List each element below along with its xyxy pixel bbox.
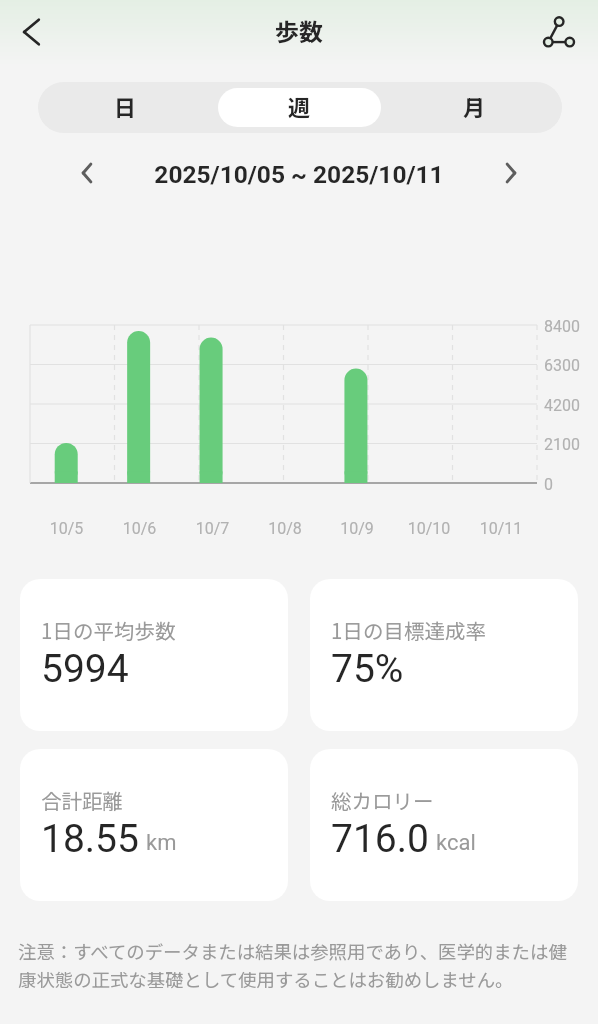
staticText: km <box>146 830 177 856</box>
staticText: 注意：すべてのデータまたは結果は参照用であり、医学的または健康状態の正式な基礎と… <box>18 938 570 993</box>
staticText: 10/9 <box>321 519 393 538</box>
staticText: 10/8 <box>249 519 321 538</box>
button[interactable]: 月 <box>393 88 556 127</box>
staticText: 総カロリー <box>331 785 434 815</box>
button[interactable]: 週 <box>218 88 381 127</box>
staticText: 75% <box>331 646 404 692</box>
staticText: 2100 <box>544 435 580 454</box>
button[interactable]: Share <box>535 8 583 56</box>
staticText: 0 <box>544 475 553 494</box>
staticText: 1日の平均歩数 <box>41 615 176 645</box>
button[interactable]: 合計距離 <box>20 749 288 901</box>
staticText: 18.55 <box>41 816 139 862</box>
staticText: 日 <box>114 90 137 122</box>
staticText: 月 <box>463 90 486 122</box>
staticText: 歩数 <box>0 13 598 48</box>
staticText: 10/7 <box>176 519 249 538</box>
button[interactable]: 日 <box>44 88 206 127</box>
button[interactable]: 1日の目標達成率 <box>310 579 578 731</box>
button[interactable]: 1日の平均歩数 <box>20 579 288 731</box>
staticText: 6300 <box>544 356 580 375</box>
staticText: 10/11 <box>465 519 537 538</box>
staticText: 10/10 <box>393 519 465 538</box>
staticText: 10/5 <box>30 519 103 538</box>
button[interactable]: Next week <box>489 151 533 195</box>
button[interactable]: Previous week <box>65 151 109 195</box>
staticText: 4200 <box>544 396 580 415</box>
button[interactable]: Back <box>7 8 55 56</box>
staticText: 2025/10/05 ~ 2025/10/11 <box>0 160 598 189</box>
staticText: 5994 <box>41 646 129 692</box>
button[interactable]: 総カロリー <box>310 749 578 901</box>
staticText: 合計距離 <box>41 785 123 815</box>
staticText: 716.0 <box>331 816 429 862</box>
staticText: 週 <box>288 90 311 122</box>
staticText: kcal <box>436 830 476 856</box>
staticText: 1日の目標達成率 <box>331 615 486 645</box>
staticText: 10/6 <box>103 519 176 538</box>
staticText: 8400 <box>544 317 580 336</box>
